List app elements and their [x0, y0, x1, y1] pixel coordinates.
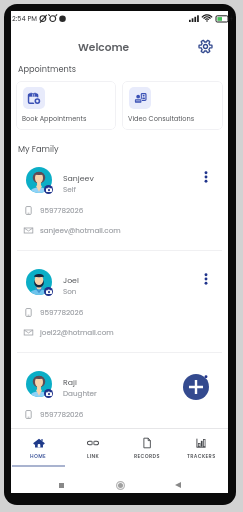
button[interactable]: RECORDS [120, 429, 174, 464]
staticText: Son [63, 286, 77, 296]
staticText: 9597782026 [40, 409, 84, 419]
staticText: Video Consultations [128, 114, 195, 123]
button[interactable]: TRACKERS [174, 429, 228, 464]
staticText: TRACKERS [187, 453, 216, 460]
button[interactable]: Back [170, 477, 186, 493]
button[interactable]: More options [197, 372, 215, 390]
button[interactable]: Video Consultations [122, 81, 223, 130]
button[interactable]: Book Appointments [16, 81, 116, 130]
staticText: Self [63, 184, 76, 194]
staticText: Raji [63, 377, 77, 388]
button[interactable]: HOME [11, 429, 66, 464]
staticText: HOME [30, 453, 47, 460]
button[interactable]: More options [197, 168, 215, 186]
staticText: My Family [18, 143, 59, 154]
button[interactable]: Settings [193, 34, 217, 58]
staticText: LINK [87, 453, 100, 460]
button[interactable]: Add family member [183, 374, 209, 400]
button[interactable]: Sanjeev [11, 159, 228, 259]
staticText: Daughter [63, 388, 97, 398]
staticText: Welcome [78, 40, 130, 55]
button[interactable]: Home [112, 477, 128, 493]
button[interactable]: More options [197, 270, 215, 288]
button[interactable]: LINK [66, 429, 120, 464]
staticText: Sanjeev [63, 173, 94, 184]
staticText: 9597782026 [40, 205, 84, 215]
staticText: joel22@hotmail.com [40, 327, 114, 337]
staticText: Joel [63, 275, 79, 286]
staticText: RECORDS [134, 453, 160, 460]
staticText: Appointments [18, 63, 77, 74]
button[interactable]: Raji [11, 363, 228, 463]
staticText: 2:54 PM [12, 14, 37, 23]
button[interactable]: Joel [11, 261, 228, 361]
staticText: Book Appointments [22, 114, 87, 123]
button[interactable]: Recents [53, 477, 69, 493]
staticText: sanjeev@hotmail.com [40, 225, 121, 235]
staticText: 9597782026 [40, 307, 84, 317]
